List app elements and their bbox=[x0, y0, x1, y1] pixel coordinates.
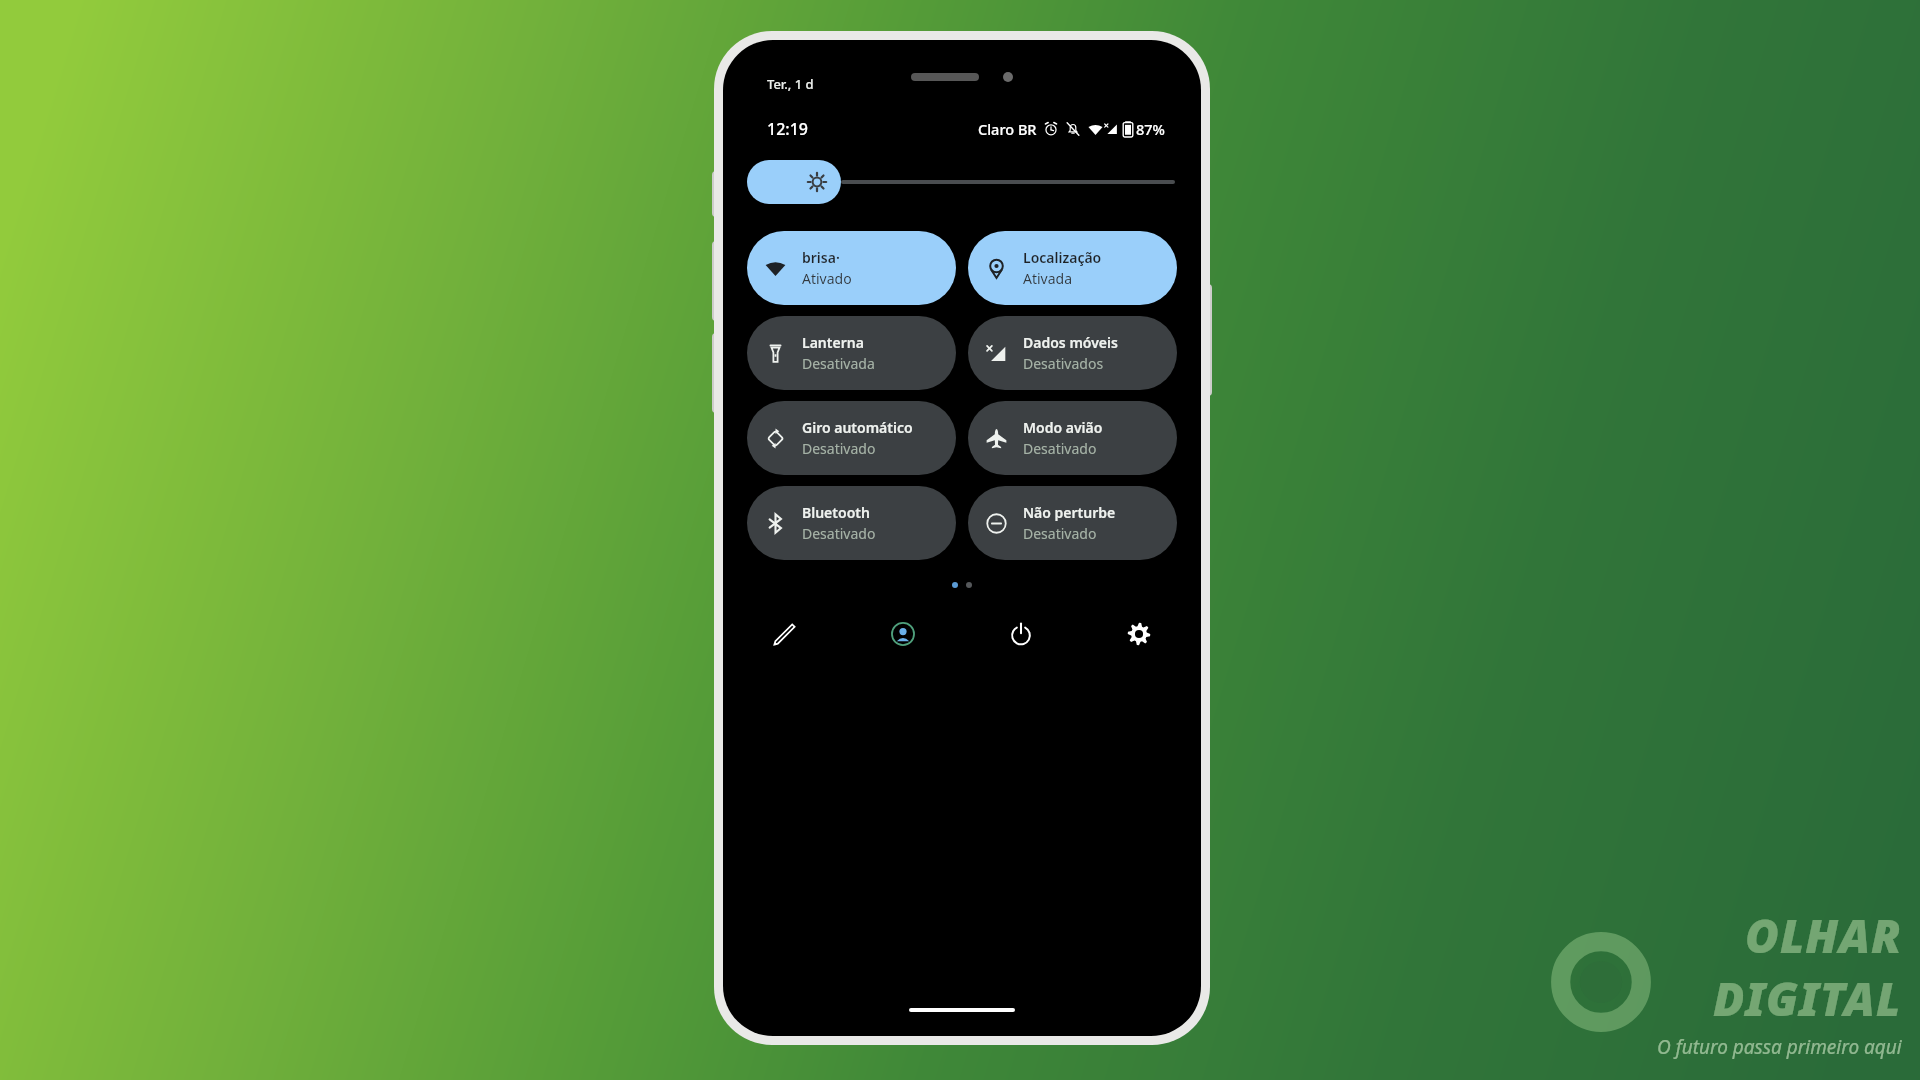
staticText: 87% bbox=[1136, 119, 1165, 139]
button[interactable]: Editar bbox=[759, 608, 811, 660]
staticText: DIGITAL bbox=[1713, 967, 1902, 1030]
button[interactable]: Usuário bbox=[877, 608, 929, 660]
staticText: brisa· bbox=[802, 248, 840, 267]
staticText: Desativada bbox=[802, 354, 875, 373]
staticText: Desativado bbox=[1023, 524, 1097, 543]
staticText: Dados móveis bbox=[1023, 333, 1118, 352]
button[interactable]: Não perturbe bbox=[968, 486, 1177, 560]
staticText: Desativados bbox=[1023, 354, 1104, 373]
button[interactable]: brisa· bbox=[747, 231, 956, 305]
staticText: Lanterna bbox=[802, 333, 864, 352]
staticText: Ativada bbox=[1023, 269, 1073, 288]
button[interactable]: Dados móveis bbox=[968, 316, 1177, 390]
button[interactable]: Modo avião bbox=[968, 401, 1177, 475]
button[interactable]: Configurações bbox=[1113, 608, 1165, 660]
staticText: 12:19 bbox=[767, 118, 808, 140]
staticText: Ativado bbox=[802, 269, 852, 288]
button[interactable]: Localização bbox=[968, 231, 1177, 305]
staticText: Desativado bbox=[802, 439, 876, 458]
button[interactable] bbox=[747, 160, 1175, 204]
button[interactable]: Giro automático bbox=[747, 401, 956, 475]
button[interactable]: Desligar bbox=[995, 608, 1047, 660]
button[interactable]: Lanterna bbox=[747, 316, 956, 390]
staticText: Modo avião bbox=[1023, 418, 1103, 437]
staticText: Desativado bbox=[1023, 439, 1097, 458]
staticText: Claro BR bbox=[978, 119, 1037, 139]
staticText: Giro automático bbox=[802, 418, 913, 437]
staticText: Desativado bbox=[802, 524, 876, 543]
staticText: Bluetooth bbox=[802, 503, 870, 522]
button[interactable]: Bluetooth bbox=[747, 486, 956, 560]
staticText: Não perturbe bbox=[1023, 503, 1116, 522]
staticText: O futuro passa primeiro aqui bbox=[1657, 1034, 1902, 1060]
staticText: Localização bbox=[1023, 248, 1102, 267]
staticText: OLHAR bbox=[1745, 904, 1902, 967]
staticText: Ter., 1 d bbox=[767, 75, 814, 93]
